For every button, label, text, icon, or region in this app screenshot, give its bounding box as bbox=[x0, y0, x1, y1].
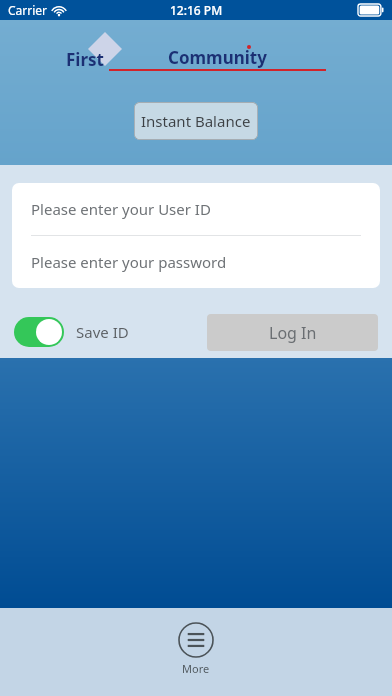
staticText: Log In bbox=[269, 322, 317, 344]
button[interactable]: Please enter your password bbox=[12, 236, 380, 288]
button[interactable]: Please enter your User ID bbox=[12, 183, 380, 235]
staticText: Save ID bbox=[76, 322, 129, 342]
staticText: Please enter your password bbox=[31, 252, 227, 272]
staticText: Carrier bbox=[8, 2, 48, 18]
staticText: More bbox=[182, 661, 210, 676]
button[interactable]: Instant Balance bbox=[134, 102, 258, 140]
staticText: Instant Balance bbox=[141, 111, 251, 131]
staticText: Community bbox=[168, 46, 267, 69]
staticText: 12:16 PM bbox=[170, 2, 223, 18]
staticText: Please enter your User ID bbox=[31, 199, 211, 219]
button[interactable]: Save ID toggle, on bbox=[14, 317, 64, 347]
button[interactable]: More bbox=[178, 622, 214, 676]
staticText: First bbox=[66, 48, 104, 71]
button[interactable]: Log In bbox=[207, 314, 378, 351]
